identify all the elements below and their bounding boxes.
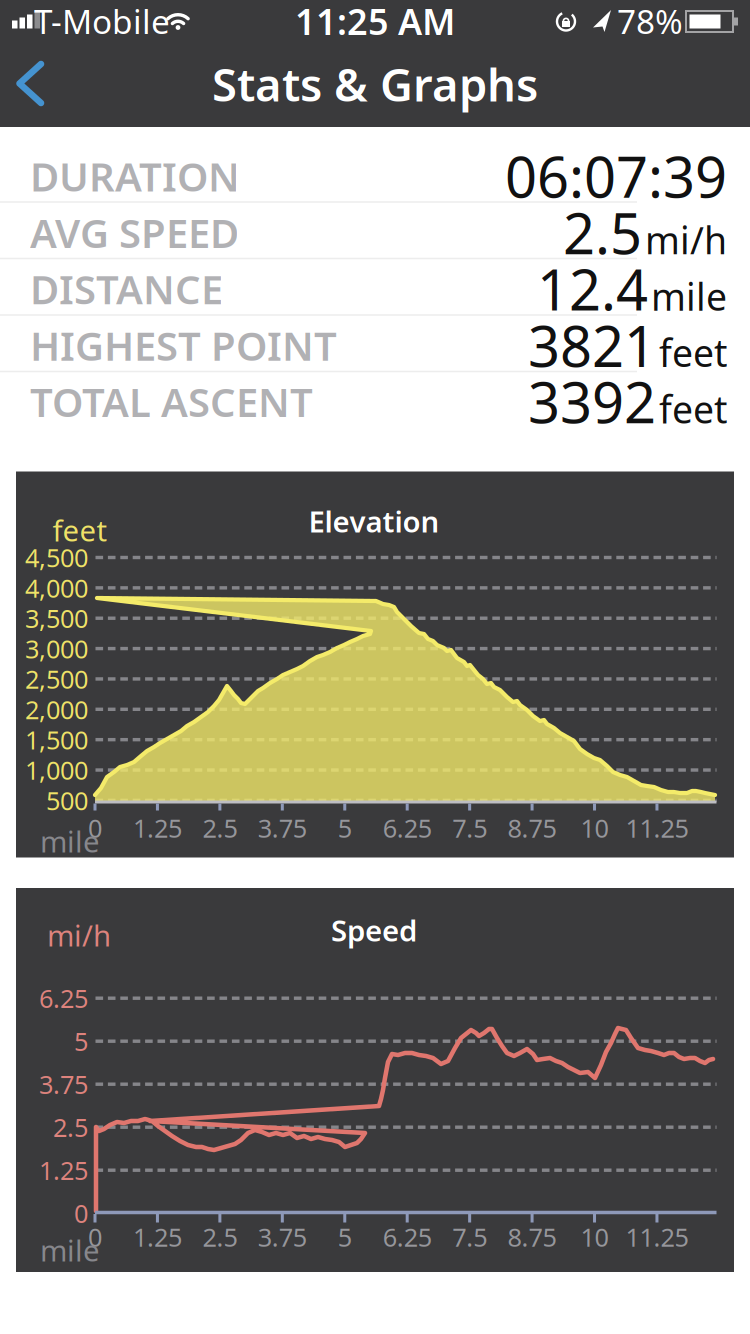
- staticText: feet: [659, 384, 727, 434]
- staticText: 5: [74, 1024, 88, 1058]
- staticText: Speed: [331, 910, 417, 949]
- staticText: 8.75: [508, 1220, 557, 1254]
- staticText: DURATION: [30, 149, 240, 202]
- staticText: 3392: [528, 364, 656, 439]
- staticText: 2.5: [202, 811, 237, 845]
- staticText: 3.75: [258, 1220, 307, 1254]
- staticText: 2.5: [202, 1220, 237, 1254]
- staticText: T-Mobile: [34, 0, 170, 43]
- staticText: 2,000: [25, 692, 88, 726]
- staticText: 11:25 AM: [295, 0, 455, 45]
- staticText: 1,500: [25, 723, 88, 756]
- staticText: mi/h: [645, 215, 727, 265]
- staticText: feet: [52, 510, 107, 549]
- staticText: 5: [338, 811, 352, 845]
- staticText: 6.25: [383, 1220, 432, 1254]
- staticText: DISTANCE: [30, 262, 223, 315]
- staticText: feet: [659, 328, 727, 377]
- staticText: 3,000: [25, 632, 88, 665]
- staticText: 11.25: [625, 1220, 688, 1254]
- staticText: 7.5: [452, 1220, 487, 1254]
- staticText: 3,500: [25, 601, 88, 635]
- staticText: 500: [46, 784, 88, 817]
- staticText: 8.75: [508, 811, 557, 845]
- staticText: 0: [88, 811, 102, 845]
- staticText: 1.25: [133, 1220, 182, 1254]
- staticText: 12.4: [537, 252, 648, 326]
- staticText: mile: [40, 1230, 100, 1269]
- staticText: 5: [338, 1220, 352, 1254]
- staticText: 2,500: [25, 662, 88, 696]
- staticText: mile: [651, 271, 727, 321]
- staticText: 4,000: [25, 571, 88, 605]
- button[interactable]: Back: [7, 60, 53, 106]
- staticText: 7.5: [452, 811, 487, 845]
- staticText: TOTAL ASCENT: [30, 375, 313, 428]
- staticText: AVG SPEED: [30, 206, 239, 259]
- staticText: mile: [40, 821, 100, 860]
- staticText: 3.75: [258, 811, 307, 845]
- staticText: 2.5: [53, 1110, 88, 1144]
- staticText: 1.25: [133, 811, 182, 845]
- staticText: 10: [580, 811, 608, 845]
- staticText: 3821: [528, 308, 656, 382]
- staticText: 6.25: [383, 811, 432, 845]
- staticText: 4,500: [25, 541, 88, 574]
- staticText: 10: [580, 1220, 608, 1254]
- staticText: 0: [88, 1220, 102, 1254]
- staticText: 11.25: [625, 811, 688, 845]
- staticText: Stats & Graphs: [212, 54, 538, 114]
- staticText: 78%: [617, 0, 683, 43]
- staticText: Elevation: [308, 501, 439, 540]
- staticText: 3.75: [39, 1067, 88, 1101]
- staticText: 1.25: [39, 1153, 88, 1187]
- staticText: 0: [74, 1196, 88, 1230]
- staticText: mi/h: [47, 915, 111, 954]
- staticText: 1,000: [25, 753, 88, 787]
- staticText: 2.5: [563, 195, 642, 270]
- staticText: HIGHEST POINT: [30, 319, 337, 372]
- staticText: 06:07:39: [505, 139, 727, 213]
- staticText: 6.25: [39, 981, 88, 1015]
